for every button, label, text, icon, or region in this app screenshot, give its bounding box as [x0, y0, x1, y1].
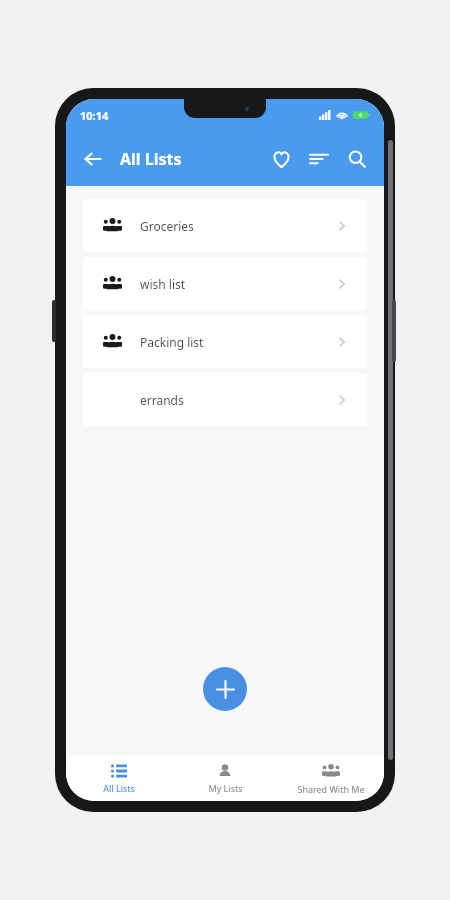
button[interactable]: Add list [203, 667, 247, 711]
staticText: Groceries [140, 218, 194, 234]
button[interactable]: My Lists [172, 755, 278, 801]
staticText: Packing list [140, 334, 204, 350]
button[interactable]: Favorites [262, 140, 300, 178]
staticText: All Lists [103, 782, 135, 794]
staticText: My Lists [208, 782, 243, 794]
staticText: All Lists [120, 148, 182, 170]
button[interactable]: wish list [83, 257, 367, 310]
staticText: errands [140, 392, 184, 408]
button[interactable]: errands [83, 373, 367, 426]
button[interactable]: All Lists [66, 755, 172, 801]
staticText: 10:14 [80, 108, 109, 123]
button[interactable]: Search [338, 140, 376, 178]
staticText: wish list [140, 276, 186, 292]
button[interactable]: Shared With Me [278, 755, 384, 801]
staticText: Shared With Me [297, 783, 365, 795]
button[interactable]: Packing list [83, 315, 367, 368]
button[interactable]: Sort [300, 140, 338, 178]
button[interactable]: Back [74, 140, 112, 178]
button[interactable]: Groceries [83, 199, 367, 252]
